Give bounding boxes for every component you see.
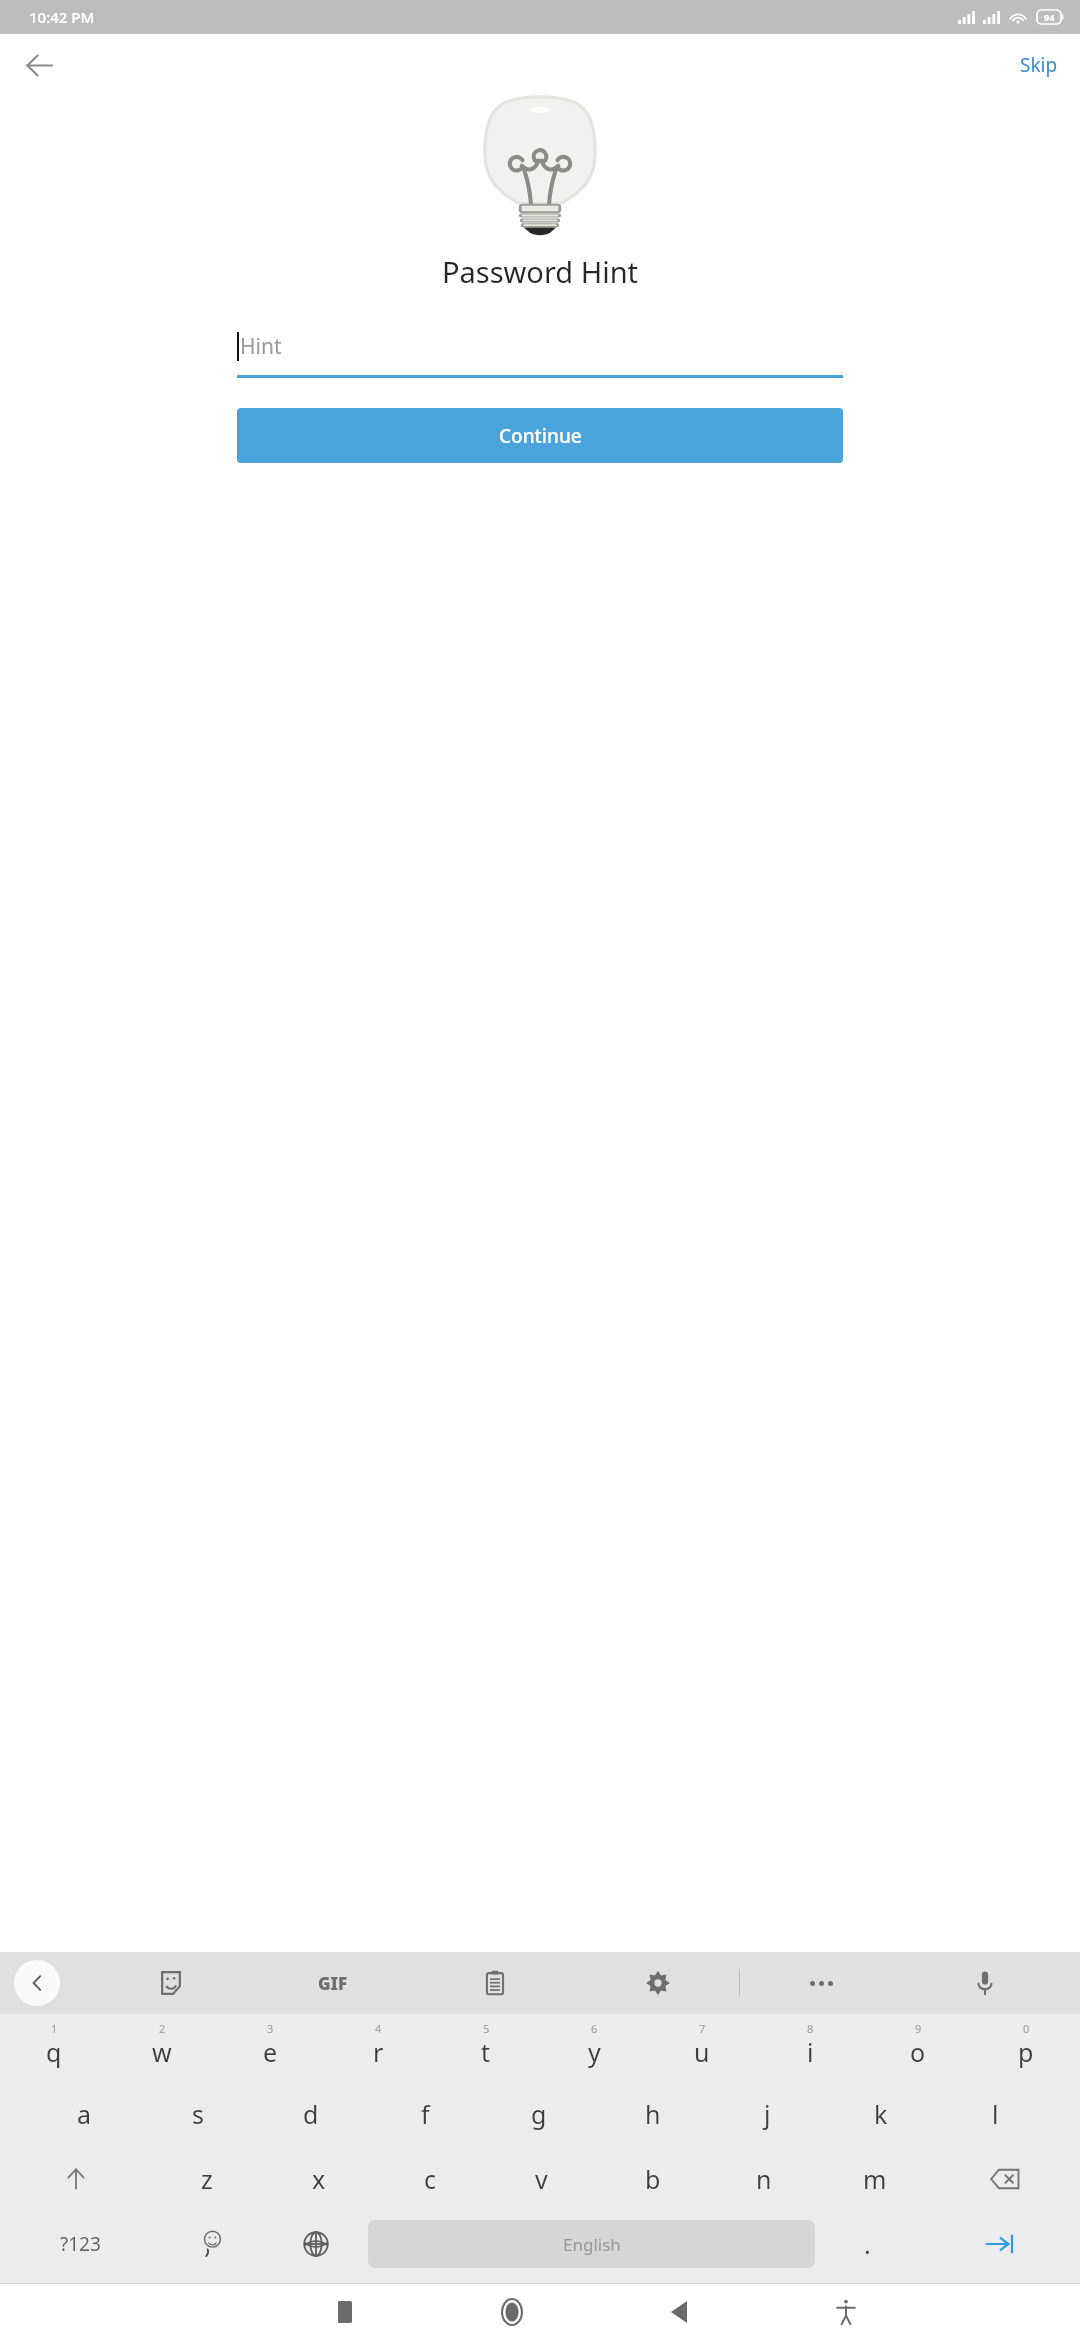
button[interactable]: Skip [1008, 44, 1070, 86]
button[interactable]: l [938, 2081, 1052, 2146]
staticText: 5 [483, 2021, 490, 2036]
button[interactable]: h [596, 2081, 710, 2146]
staticText: 8 [807, 2021, 814, 2036]
button[interactable]: f [368, 2081, 482, 2146]
button[interactable]: Change language [264, 2211, 368, 2277]
button[interactable]: ?123 [0, 2211, 160, 2277]
button[interactable]: Back [595, 2284, 762, 2340]
staticText: d [303, 2097, 319, 2131]
button[interactable]: s [141, 2081, 254, 2146]
staticText: 94 [1044, 11, 1055, 23]
button[interactable]: b [597, 2146, 708, 2211]
staticText: h [645, 2097, 661, 2131]
button[interactable]: n [708, 2146, 819, 2211]
button[interactable]: 4 [324, 2016, 432, 2081]
staticText: ?123 [60, 2231, 101, 2257]
button[interactable]: z [151, 2146, 263, 2211]
button[interactable]: Home [428, 2284, 595, 2340]
staticText: b [645, 2162, 661, 2196]
button[interactable]: Backspace [930, 2146, 1080, 2211]
staticText: 1 [51, 2021, 58, 2036]
staticText: 6 [591, 2021, 598, 2036]
button[interactable]: 7 [648, 2016, 756, 2081]
button[interactable]: 0 [972, 2016, 1080, 2081]
button[interactable]: x [263, 2146, 375, 2211]
button[interactable]: a [28, 2081, 141, 2146]
button[interactable]: c [375, 2146, 486, 2211]
staticText: i [807, 2035, 814, 2069]
staticText: m [863, 2162, 887, 2196]
button[interactable]: j [710, 2081, 824, 2146]
staticText: x [312, 2162, 326, 2196]
button[interactable]: d [254, 2081, 368, 2146]
staticText: English [563, 2233, 621, 2256]
button[interactable]: g [482, 2081, 596, 2146]
staticText: . [864, 2227, 871, 2261]
staticText: 7 [699, 2021, 706, 2036]
staticText: Skip [1020, 52, 1058, 78]
staticText: f [421, 2097, 430, 2131]
button[interactable]: k [824, 2081, 938, 2146]
staticText: q [46, 2035, 62, 2069]
button[interactable]: 8 [756, 2016, 864, 2081]
staticText: 3 [267, 2021, 274, 2036]
staticText: 9 [915, 2021, 922, 2036]
staticText: g [531, 2097, 547, 2131]
button[interactable]: 3 [216, 2016, 324, 2081]
button[interactable]: GIF [252, 1952, 414, 2014]
staticText: z [201, 2162, 213, 2196]
staticText: GIF [318, 1972, 348, 1995]
button[interactable]: Settings [576, 1952, 739, 2014]
staticText: o [910, 2035, 926, 2069]
staticText: e [263, 2035, 278, 2069]
button[interactable]: English [368, 2220, 815, 2268]
button[interactable]: Stickers [90, 1952, 252, 2014]
staticText: 4 [375, 2021, 382, 2036]
button[interactable]: v [486, 2146, 597, 2211]
staticText: Hint [240, 332, 282, 361]
staticText: Password Hint [0, 252, 1080, 291]
button[interactable]: Voice input [903, 1952, 1066, 2014]
button[interactable]: 5 [432, 2016, 540, 2081]
staticText: t [481, 2035, 491, 2069]
staticText: s [192, 2097, 204, 2131]
staticText: k [874, 2097, 888, 2131]
staticText: j [764, 2097, 771, 2131]
button[interactable]: Clipboard [414, 1952, 576, 2014]
staticText: p [1018, 2035, 1034, 2069]
staticText: w [152, 2035, 172, 2069]
button[interactable]: . [815, 2211, 919, 2277]
staticText: r [373, 2035, 384, 2069]
staticText: a [77, 2097, 92, 2131]
staticText: n [756, 2162, 772, 2196]
button[interactable]: Emoji [160, 2211, 264, 2277]
button[interactable]: Hide toolbar [14, 1960, 60, 2006]
button[interactable]: Continue [237, 408, 843, 463]
staticText: 2 [159, 2021, 166, 2036]
button[interactable]: Back [14, 40, 64, 90]
staticText: l [992, 2097, 999, 2131]
staticText: 0 [1023, 2021, 1030, 2036]
button[interactable]: m [819, 2146, 930, 2211]
staticText: v [535, 2162, 548, 2196]
button[interactable]: 1 [0, 2016, 108, 2081]
staticText: 10:42 PM [29, 7, 95, 27]
button[interactable]: Shift [0, 2146, 151, 2211]
staticText: c [424, 2162, 437, 2196]
button[interactable]: More options [740, 1952, 903, 2014]
staticText: u [694, 2035, 710, 2069]
button[interactable]: Accessibility [762, 2284, 929, 2340]
button[interactable]: 6 [540, 2016, 648, 2081]
button[interactable]: Recent apps [261, 2284, 428, 2340]
button[interactable]: Next field [919, 2211, 1080, 2277]
staticText: Continue [499, 423, 582, 449]
button[interactable]: Hint [237, 324, 843, 368]
button[interactable]: 2 [108, 2016, 216, 2081]
button[interactable]: 9 [864, 2016, 972, 2081]
staticText: y [588, 2035, 601, 2069]
